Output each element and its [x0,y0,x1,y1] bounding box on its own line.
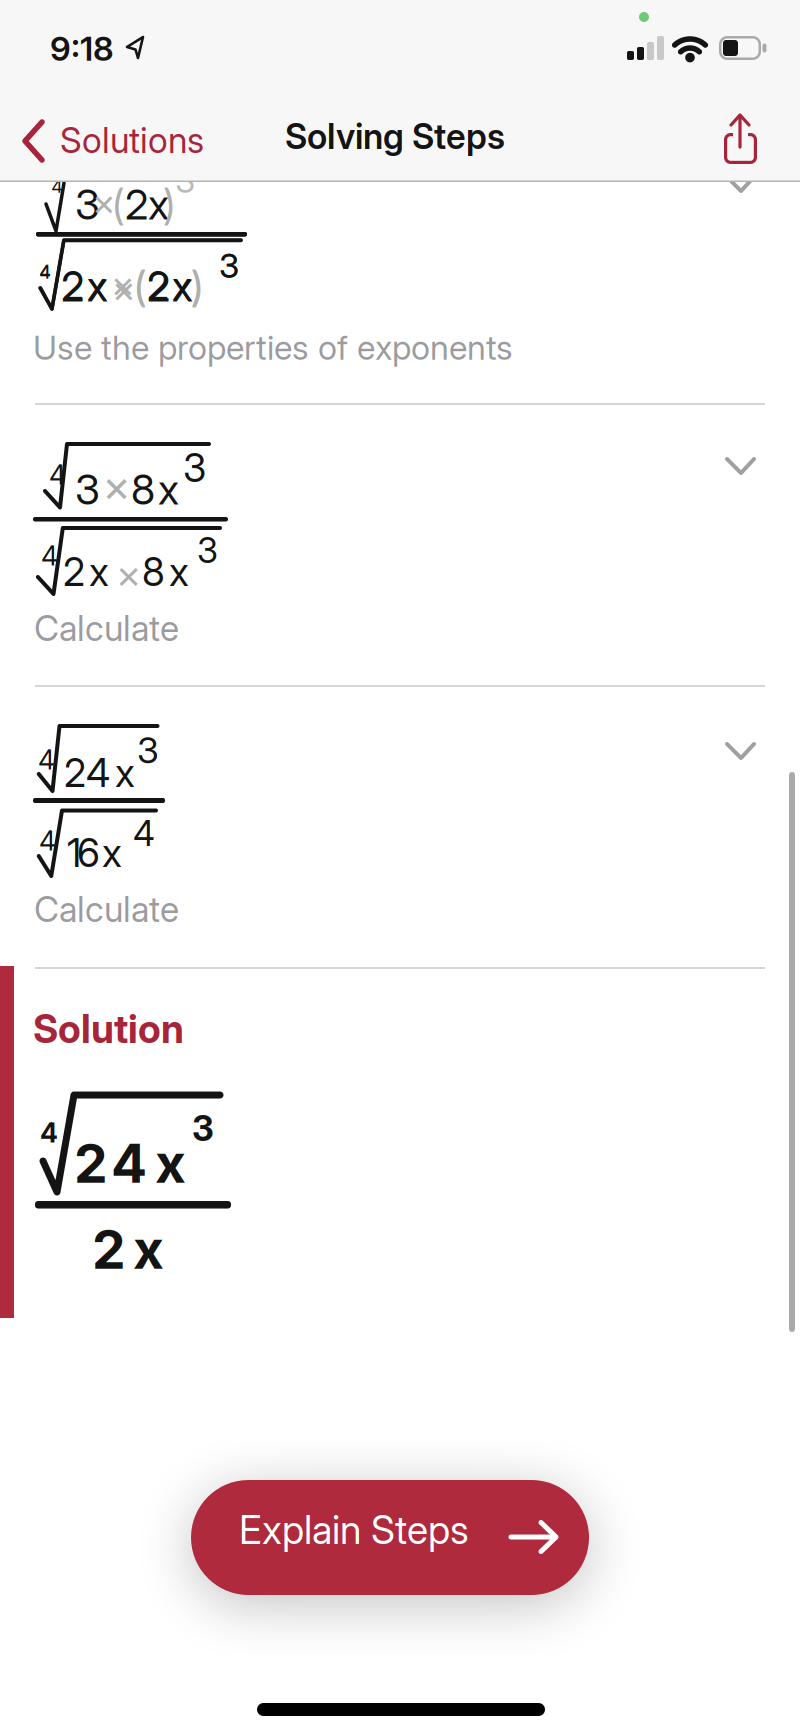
staticText: 8 [131,465,155,514]
button[interactable] [710,105,772,172]
staticText: × [102,460,131,512]
staticText: 1 [67,830,81,876]
staticText: x [172,263,192,309]
staticText: x [172,262,193,311]
button[interactable]: Solutions [15,110,230,172]
staticText: x [148,180,169,229]
staticText: 6 [77,830,100,876]
staticText: 2 [147,263,169,309]
staticText: 2 [74,1132,108,1195]
staticText: Solving Steps [285,116,505,157]
staticText: Use the properties of exponents [33,328,513,367]
staticText: × [92,180,116,224]
staticText: Calculate [34,608,179,649]
staticText: 3 [75,465,100,514]
staticText: 3 [75,180,100,229]
staticText: × [112,267,136,311]
staticText: 4 [111,1132,147,1195]
staticText: 4 [39,825,56,856]
staticText: 2 [125,180,148,229]
staticText: 3 [192,1108,214,1149]
staticText: Calculate [34,889,179,930]
staticText: ) [191,263,203,309]
staticText: 4 [39,261,51,283]
staticText: 4 [51,175,63,197]
staticText: 4 [41,540,58,571]
staticText: x [169,549,189,595]
staticText: 2 [62,263,84,309]
staticText: × [116,550,141,597]
staticText: 2 [63,549,85,595]
staticText: ) [191,262,203,311]
button[interactable] [0,404,800,686]
staticText: x [89,549,109,595]
staticText: x [155,1132,186,1195]
staticText: 4 [133,813,155,854]
staticText: x [87,262,108,311]
staticText: ( [134,262,146,311]
staticText: x [115,750,135,796]
staticText: 8 [142,549,165,595]
staticText: 2 [61,262,84,311]
staticText: 2 [92,1218,126,1281]
staticText: Explain Steps [239,1507,469,1553]
staticText: ( [134,263,146,309]
staticText: 3 [197,530,218,571]
staticText: ) [163,180,175,229]
staticText: x [87,263,107,309]
staticText: × [111,262,135,306]
staticText: Solution [33,1006,184,1052]
button[interactable] [0,686,800,968]
staticText: Solutions [60,120,204,161]
staticText: 2 [64,750,86,796]
staticText: 4 [40,1117,58,1148]
staticText: 4 [39,260,51,282]
staticText: 4 [86,750,110,796]
staticText: 3 [183,445,206,491]
staticText: x [158,465,179,514]
button[interactable]: Explain Steps [191,1480,589,1595]
staticText: ( [112,180,124,229]
staticText: 3 [219,246,239,285]
staticText: 3 [175,161,195,200]
staticText: x [133,1218,164,1281]
staticText: 4 [49,459,66,490]
staticText: 4 [38,744,55,775]
staticText: 9:18 [50,29,114,68]
staticText: 2 [147,262,170,311]
staticText: 3 [219,246,239,285]
staticText: x [102,830,122,876]
button[interactable] [0,182,800,404]
staticText: 3 [137,729,159,771]
